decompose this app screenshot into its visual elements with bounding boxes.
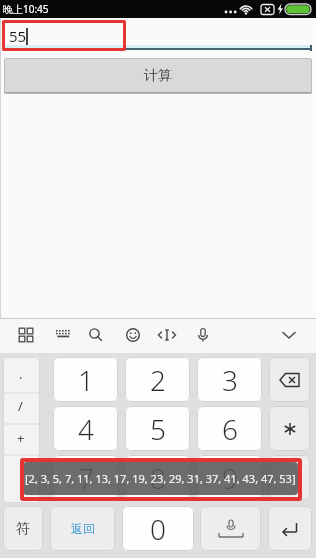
staticText: 2 xyxy=(150,361,166,399)
button[interactable]: 符 xyxy=(3,506,43,551)
staticText: 6 xyxy=(222,410,238,448)
staticText: [2, 3, 5, 7, 11, 13, 17, 19, 23, 29, 31,… xyxy=(25,471,296,486)
button[interactable]: 5 xyxy=(125,406,190,451)
button[interactable] xyxy=(3,424,40,455)
button[interactable] xyxy=(200,506,261,551)
button[interactable] xyxy=(187,319,219,353)
button[interactable]: 返回 xyxy=(50,506,115,551)
staticText: 晚上10:45 xyxy=(3,2,49,16)
button[interactable] xyxy=(47,319,79,353)
button[interactable] xyxy=(151,319,183,353)
button[interactable]: 0 xyxy=(122,506,194,551)
staticText: 4 xyxy=(78,410,94,448)
staticText: 7 xyxy=(78,459,94,497)
button[interactable]: 1 xyxy=(53,357,118,402)
staticText: 0 xyxy=(150,510,166,548)
button[interactable] xyxy=(117,319,149,353)
staticText: 符 xyxy=(16,520,30,538)
button[interactable]: 8 xyxy=(125,455,190,500)
button[interactable]: 9 xyxy=(197,455,262,500)
button[interactable] xyxy=(3,357,40,393)
staticText: + xyxy=(17,429,25,447)
staticText: 9 xyxy=(222,459,238,497)
staticText: 1 xyxy=(78,361,94,399)
button[interactable] xyxy=(269,406,310,451)
staticText: 8 xyxy=(150,459,166,497)
button[interactable]: 计算 xyxy=(4,58,312,94)
staticText: . xyxy=(19,365,23,383)
button[interactable] xyxy=(3,393,40,424)
staticText: 5 xyxy=(150,410,166,448)
button[interactable] xyxy=(10,319,42,353)
staticText: 3 xyxy=(222,361,238,399)
button[interactable] xyxy=(80,319,112,353)
button[interactable]: 6 xyxy=(197,406,262,451)
staticText: / xyxy=(18,397,23,415)
button[interactable] xyxy=(273,319,305,353)
button[interactable] xyxy=(269,455,310,500)
button[interactable] xyxy=(268,506,312,551)
button[interactable]: 2 xyxy=(125,357,190,402)
button[interactable]: 3 xyxy=(197,357,262,402)
button[interactable]: 7 xyxy=(53,455,118,500)
button[interactable] xyxy=(269,357,310,402)
staticText: 返回 xyxy=(71,521,95,536)
staticText: 55 xyxy=(9,26,27,46)
button[interactable]: 4 xyxy=(53,406,118,451)
staticText: 计算 xyxy=(144,67,172,85)
